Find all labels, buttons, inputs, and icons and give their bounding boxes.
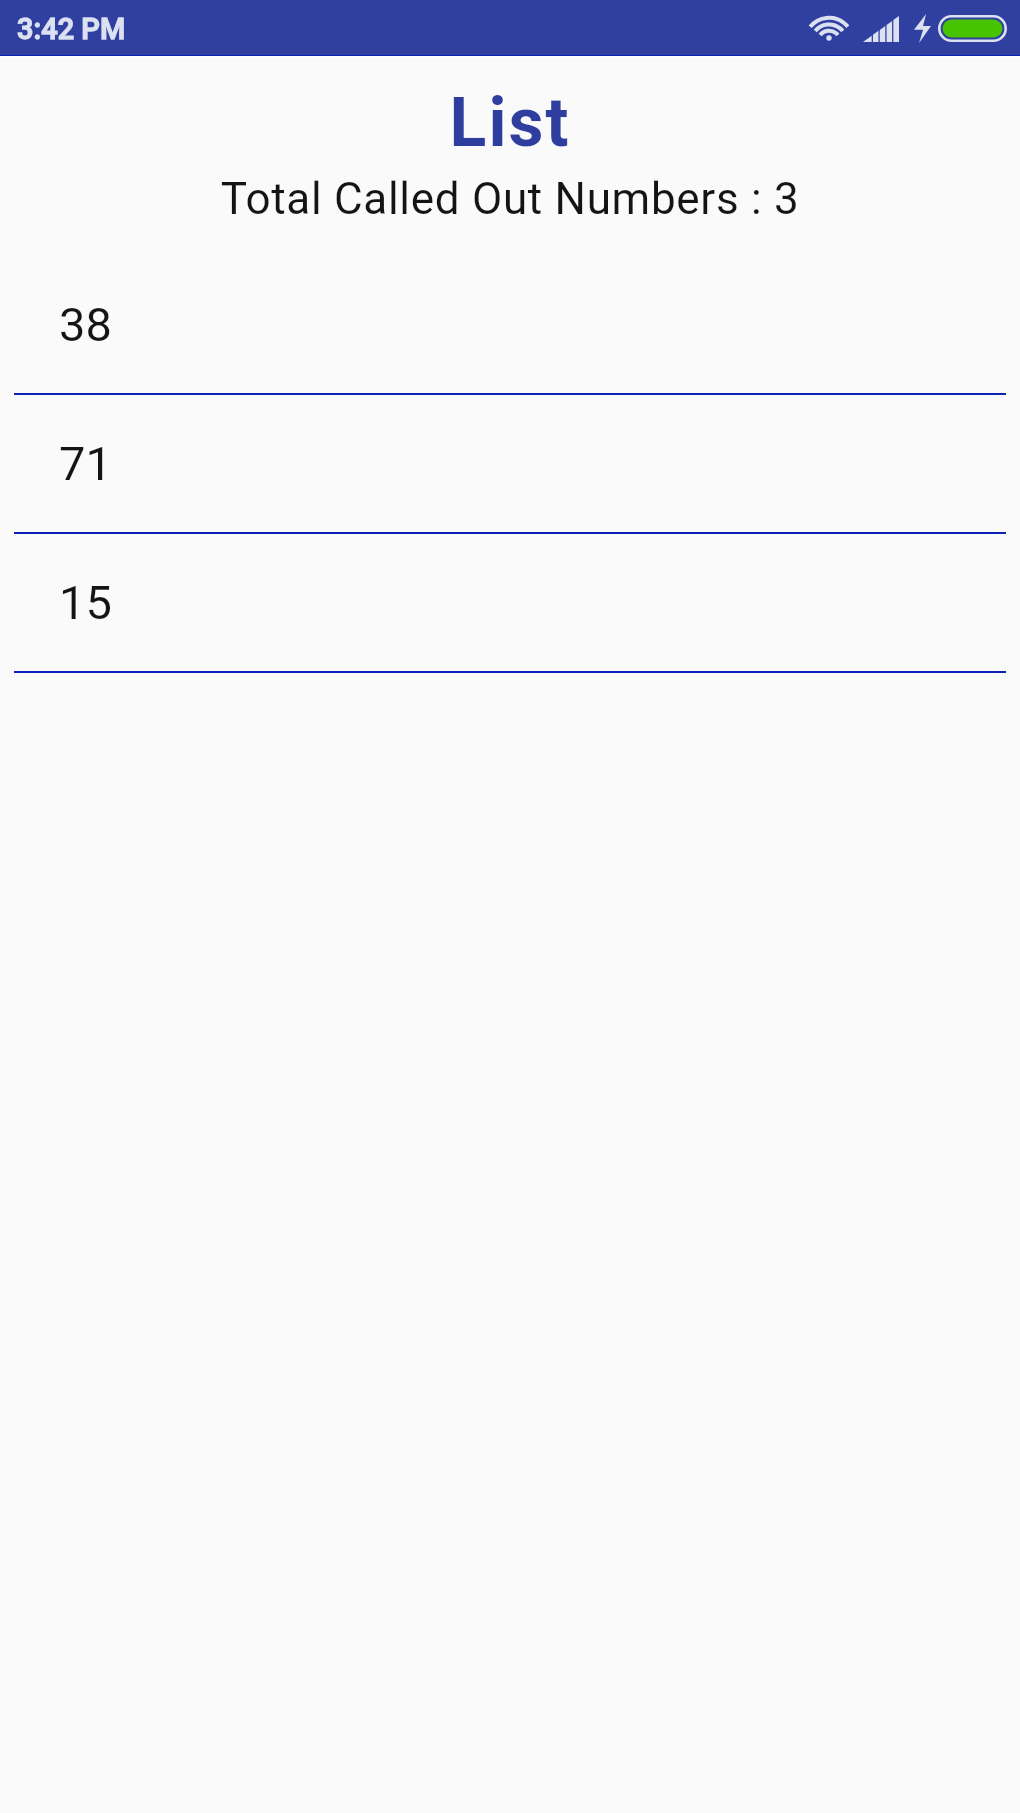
staticText: 3:42 PM <box>17 12 126 46</box>
staticText: List <box>0 83 1020 163</box>
button[interactable]: 15 <box>0 534 1020 673</box>
button[interactable]: 71 <box>0 395 1020 534</box>
other: Battery <box>938 15 1007 42</box>
other: Wi-Fi <box>810 15 848 42</box>
button[interactable]: 38 <box>0 256 1020 395</box>
staticText: 71 <box>59 436 112 491</box>
staticText: 15 <box>59 575 112 630</box>
other: Charging <box>914 14 931 43</box>
staticText: 38 <box>59 297 112 352</box>
staticText: Total Called Out Numbers : 3 <box>0 173 1020 225</box>
other: Cellular signal <box>863 16 899 42</box>
